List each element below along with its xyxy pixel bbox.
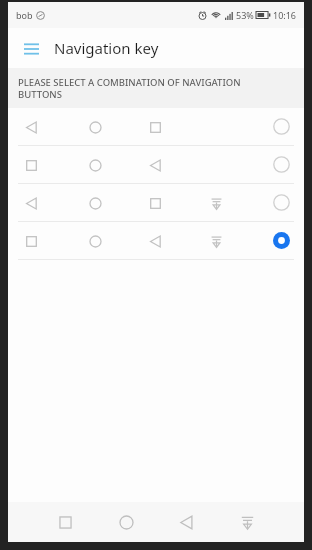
- staticText: PLEASE SELECT A COMBINATION OF NAVIGATIO…: [18, 76, 241, 101]
- button[interactable]: Navigation key combination option: [8, 108, 304, 145]
- staticText: 10:16: [273, 9, 297, 21]
- staticText: bob: [16, 9, 33, 21]
- button[interactable]: Navigation key combination option: [8, 184, 304, 221]
- button[interactable]: Home: [109, 504, 143, 540]
- staticText: Navigation key: [54, 38, 159, 58]
- button[interactable]: Open navigation menu: [18, 35, 44, 61]
- staticText: 53%: [236, 9, 254, 21]
- button[interactable]: Hide navigation bar: [230, 504, 264, 540]
- button[interactable]: Navigation key combination option: [8, 222, 304, 259]
- button[interactable]: Recent apps: [48, 504, 82, 540]
- button[interactable]: Navigation key combination option: [8, 146, 304, 183]
- button[interactable]: Back: [169, 504, 203, 540]
